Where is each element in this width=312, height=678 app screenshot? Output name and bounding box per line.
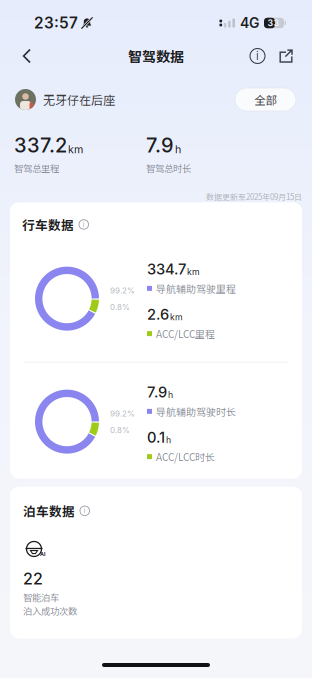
button[interactable]: Back — [0, 39, 42, 72]
staticText: 33 — [267, 18, 279, 28]
staticText: h — [175, 143, 181, 156]
staticText: 7.9 — [147, 383, 167, 401]
staticText: 泊入成功次数 — [23, 604, 77, 617]
staticText: 337.2 — [14, 133, 67, 157]
staticText: 数据更新至2025年09月15日 — [206, 191, 302, 202]
staticText: km — [187, 267, 200, 277]
staticText: 导航辅助驾驶里程 — [156, 281, 236, 296]
staticText: i — [83, 220, 85, 229]
button[interactable]: Share — [272, 40, 312, 72]
staticText: 2.6 — [147, 306, 169, 323]
staticText: 7.9 — [146, 133, 174, 157]
staticText: 334.7 — [147, 260, 186, 278]
staticText: 行车数据 — [22, 215, 74, 234]
staticText: 22 — [23, 569, 43, 588]
staticText: 导航辅助驾驶时长 — [156, 404, 236, 419]
staticText: 智驾数据 — [128, 46, 184, 66]
staticText: 智驾总时长 — [146, 161, 191, 175]
staticText: 0.8% — [110, 302, 130, 312]
button[interactable]: 全部 — [235, 88, 296, 111]
staticText: 4G — [240, 14, 259, 31]
staticText: 0.8% — [110, 425, 130, 435]
staticText: i — [256, 49, 259, 63]
staticText: 23:57 — [34, 14, 78, 32]
staticText: 99.2% — [110, 409, 135, 418]
staticText: ACC/LCC里程 — [156, 326, 215, 341]
staticText: h — [168, 390, 173, 400]
staticText: 智驾总里程 — [14, 161, 59, 175]
staticText: h — [166, 435, 171, 445]
staticText: 泊车数据 — [23, 502, 75, 520]
staticText: 智能泊车 — [23, 590, 59, 604]
staticText: ACC/LCC时长 — [156, 449, 215, 464]
staticText: km — [170, 312, 183, 322]
staticText: 无牙仔在后座 — [43, 91, 115, 108]
staticText: AI — [40, 551, 45, 557]
button[interactable]: Info — [243, 40, 272, 71]
staticText: 全部 — [254, 91, 276, 108]
staticText: 99.2% — [110, 286, 135, 295]
staticText: 0.1 — [147, 429, 165, 446]
staticText: km — [68, 143, 83, 156]
staticText: i — [84, 507, 86, 515]
